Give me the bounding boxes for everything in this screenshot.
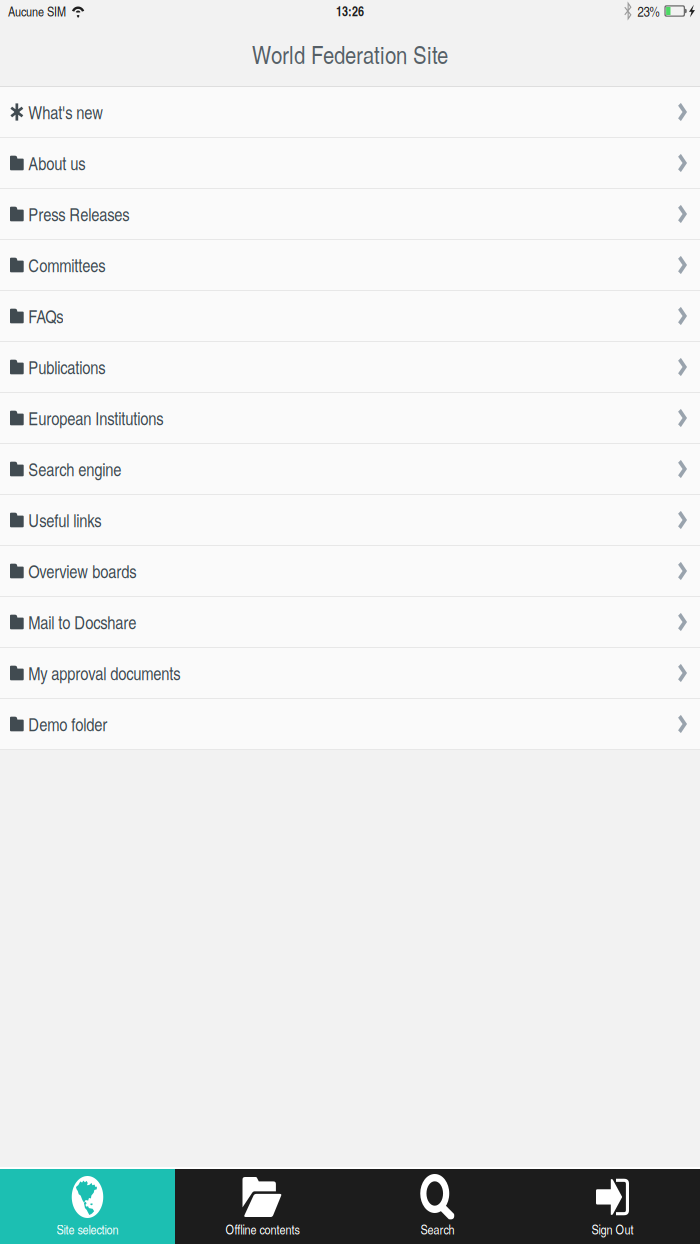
staticText: Site selection bbox=[56, 1220, 118, 1238]
button[interactable]: Publications bbox=[0, 342, 700, 393]
button[interactable]: Offline contents bbox=[175, 1169, 350, 1244]
staticText: European Institutions bbox=[28, 406, 163, 430]
button[interactable]: Press Releases bbox=[0, 189, 700, 240]
button[interactable]: What's new bbox=[0, 87, 700, 138]
staticText: Committees bbox=[28, 253, 105, 277]
button[interactable]: European Institutions bbox=[0, 393, 700, 444]
staticText: Offline contents bbox=[225, 1220, 299, 1238]
staticText: Search bbox=[420, 1220, 454, 1238]
button[interactable]: Committees bbox=[0, 240, 700, 291]
staticText: Search engine bbox=[28, 457, 121, 481]
staticText: Aucune SIM bbox=[8, 2, 66, 20]
button[interactable]: Search engine bbox=[0, 444, 700, 495]
button[interactable]: Site selection bbox=[0, 1169, 175, 1244]
button[interactable]: About us bbox=[0, 138, 700, 189]
staticText: 13:26 bbox=[336, 2, 364, 20]
staticText: Sign Out bbox=[591, 1220, 633, 1238]
staticText: Useful links bbox=[28, 508, 101, 532]
staticText: My approval documents bbox=[28, 661, 180, 685]
staticText: World Federation Site bbox=[252, 37, 448, 71]
button[interactable]: My approval documents bbox=[0, 648, 700, 699]
staticText: Press Releases bbox=[28, 202, 129, 226]
staticText: About us bbox=[28, 151, 85, 175]
button[interactable]: Demo folder bbox=[0, 699, 700, 750]
button[interactable]: Mail to Docshare bbox=[0, 597, 700, 648]
staticText: What's new bbox=[28, 100, 103, 124]
staticText: 23% bbox=[637, 1, 659, 21]
button[interactable]: Useful links bbox=[0, 495, 700, 546]
button[interactable]: Overview boards bbox=[0, 546, 700, 597]
staticText: Demo folder bbox=[28, 712, 107, 736]
button[interactable]: Search bbox=[350, 1169, 525, 1244]
button[interactable]: Sign Out bbox=[525, 1169, 700, 1244]
staticText: Publications bbox=[28, 355, 105, 379]
staticText: FAQs bbox=[28, 304, 63, 328]
button[interactable]: FAQs bbox=[0, 291, 700, 342]
staticText: Overview boards bbox=[28, 559, 136, 583]
staticText: Mail to Docshare bbox=[28, 610, 136, 634]
